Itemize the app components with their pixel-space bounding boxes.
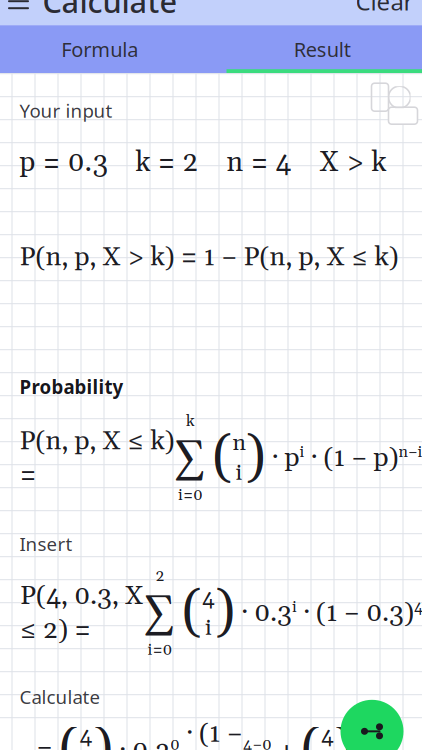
- staticText: =: [36, 734, 59, 750]
- staticText: Formula: [61, 36, 138, 62]
- staticText: ): [245, 424, 265, 492]
- staticText: ): [93, 717, 113, 750]
- staticText: P(n, p, X > k) = 1 − P(n, p, X ≤ k): [19, 240, 398, 274]
- staticText: ·: [354, 734, 373, 750]
- staticText: (: [301, 717, 321, 750]
- staticText: i: [235, 459, 242, 488]
- staticText: 4: [79, 722, 92, 750]
- staticText: i: [205, 614, 212, 642]
- staticText: i=0: [178, 485, 203, 505]
- staticText: n: [232, 429, 245, 458]
- staticText: ): [334, 717, 354, 750]
- staticText: 4−0: [243, 735, 272, 750]
- staticText: Calculate: [42, 0, 177, 22]
- staticText: (: [182, 579, 202, 647]
- staticText: · 0.3: [113, 734, 170, 750]
- staticText: P(n, p, X ≤ k) =: [19, 424, 174, 492]
- staticText: Probability: [19, 374, 123, 399]
- staticText: i=0: [147, 640, 172, 660]
- staticText: ∑: [144, 584, 176, 642]
- staticText: P(4, 0.3, X ≤ 2) =: [20, 579, 144, 647]
- staticText: · (1 − p): [304, 441, 398, 475]
- button[interactable]: Menu: [0, 0, 42, 25]
- staticText: 0: [170, 735, 180, 750]
- staticText: · p: [265, 441, 299, 475]
- staticText: Your input: [19, 98, 112, 123]
- staticText: +: [272, 734, 301, 750]
- staticText: 4−: [414, 597, 422, 617]
- staticText: k: [186, 411, 195, 431]
- staticText: i: [299, 442, 304, 462]
- staticText: · (1 − 0.3): [180, 717, 243, 750]
- staticText: p = 0.3 k = 2 n = 4 X > k: [19, 145, 386, 180]
- staticText: Clear: [355, 0, 413, 17]
- staticText: Result: [294, 36, 351, 62]
- staticText: 4: [202, 584, 215, 613]
- button[interactable]: Share: [340, 700, 403, 750]
- staticText: Calculate: [19, 684, 100, 709]
- staticText: (1 −: [373, 734, 417, 750]
- staticText: · (1 − 0.3): [297, 596, 414, 630]
- button[interactable]: Formula: [0, 25, 211, 73]
- staticText: ∑: [174, 429, 206, 487]
- staticText: · 0.3: [235, 596, 292, 630]
- staticText: 4: [321, 722, 334, 750]
- staticText: (: [59, 717, 79, 750]
- button[interactable]: Result: [211, 25, 422, 73]
- staticText: ): [215, 579, 235, 647]
- staticText: i: [292, 597, 297, 617]
- staticText: n−i: [398, 442, 422, 462]
- button[interactable]: Clear: [341, 0, 422, 25]
- staticText: (: [212, 424, 232, 492]
- staticText: 2: [155, 566, 164, 586]
- staticText: Insert: [19, 531, 72, 556]
